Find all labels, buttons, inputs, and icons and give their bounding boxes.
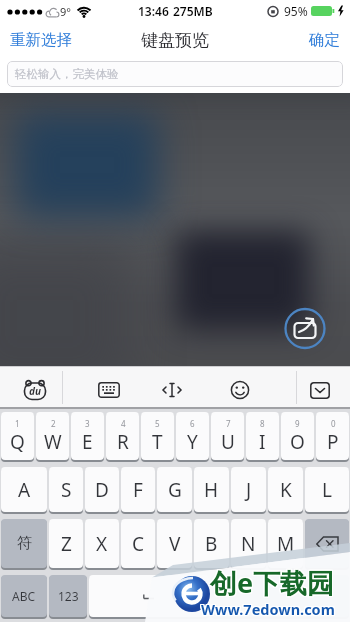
button[interactable]: du <box>18 375 52 405</box>
staticText: 创e下载园 <box>210 563 335 600</box>
staticText: Www.7edown.com <box>200 599 334 619</box>
staticText: 重新选择 <box>10 30 72 50</box>
button[interactable] <box>303 375 337 405</box>
button[interactable]: Z <box>49 519 83 568</box>
staticText: 创e下载园 <box>210 565 335 602</box>
button[interactable] <box>211 575 349 617</box>
staticText: 轻松输入，完美体验 <box>15 67 119 81</box>
button[interactable] <box>223 375 257 405</box>
staticText: 创e下载园 <box>209 565 334 602</box>
staticText: Www.7edown.com <box>201 600 335 620</box>
staticText: du <box>29 384 41 398</box>
staticText: Www.7edown.com <box>202 600 336 620</box>
staticText: 创e下载园 <box>211 564 336 601</box>
staticText: F <box>133 477 143 503</box>
staticText: 确定 <box>309 30 340 50</box>
button[interactable]: 4 <box>106 412 139 460</box>
button[interactable]: M <box>268 519 303 568</box>
staticText: 创e下载园 <box>210 564 335 601</box>
button[interactable]: J <box>231 467 266 512</box>
staticText: Www.7edown.com <box>202 598 336 618</box>
button[interactable] <box>92 375 126 405</box>
button[interactable]: N <box>231 519 266 568</box>
button[interactable]: F <box>121 467 155 512</box>
staticText: Www.7edown.com <box>202 599 336 619</box>
button[interactable]: D <box>85 467 119 512</box>
staticText: 4 <box>121 418 126 429</box>
staticText: L <box>322 477 332 503</box>
staticText: X <box>96 531 108 557</box>
staticText: 创e下载园 <box>211 563 336 600</box>
button[interactable]: G <box>157 467 192 512</box>
button[interactable]: ABC <box>1 575 47 617</box>
staticText: 123 <box>58 588 79 604</box>
staticText: 1 <box>15 418 20 429</box>
staticText: 95% <box>284 3 308 19</box>
staticText: C <box>132 531 145 557</box>
button[interactable] <box>155 375 189 405</box>
staticText: P <box>327 429 339 455</box>
button[interactable]: K <box>268 467 303 512</box>
staticText: G <box>168 477 182 503</box>
staticText: V <box>169 531 181 557</box>
staticText: J <box>246 477 252 503</box>
staticText: 符 <box>17 534 32 553</box>
staticText: 7 <box>226 418 231 429</box>
button[interactable]: 0 <box>316 412 349 460</box>
staticText: 键盘预览 <box>141 30 209 51</box>
button[interactable]: 6 <box>176 412 209 460</box>
staticText: T <box>152 429 163 455</box>
button[interactable]: 7 <box>211 412 244 460</box>
button[interactable]: 9 <box>281 412 314 460</box>
staticText: A <box>18 477 31 503</box>
staticText: Www.7edown.com <box>201 599 335 619</box>
staticText: Www.7edown.com <box>200 600 334 620</box>
staticText: D <box>95 477 109 503</box>
staticText: N <box>241 531 256 557</box>
button[interactable]: 8 <box>246 412 279 460</box>
button[interactable] <box>305 519 349 568</box>
button[interactable]: B <box>194 519 229 568</box>
button[interactable]: 确定 <box>301 24 350 56</box>
button[interactable]: 轻松输入，完美体验 <box>7 61 343 87</box>
button[interactable]: 5 <box>141 412 174 460</box>
button[interactable]: 3 <box>71 412 104 460</box>
staticText: 275MB <box>173 3 213 19</box>
staticText: ABC <box>12 588 36 604</box>
staticText: K <box>280 477 292 503</box>
staticText: R <box>117 429 129 455</box>
staticText: 创e下载园 <box>209 563 334 600</box>
staticText: M <box>277 531 295 557</box>
staticText: 6 <box>190 418 195 429</box>
button[interactable]: 123 <box>49 575 87 617</box>
staticText: B <box>205 531 218 557</box>
button[interactable]: 重新选择 <box>0 24 80 56</box>
staticText: 13:46 <box>138 3 169 19</box>
button[interactable]: H <box>194 467 229 512</box>
button[interactable]: 1 <box>1 412 34 460</box>
button[interactable]: X <box>85 519 119 568</box>
staticText: 5 <box>155 418 160 429</box>
staticText: I <box>259 429 266 455</box>
button[interactable]: S <box>49 467 83 512</box>
button[interactable]: L <box>305 467 349 512</box>
staticText: Z <box>61 531 72 557</box>
button[interactable]: 符 <box>1 519 47 568</box>
staticText: U <box>221 429 235 455</box>
button[interactable]: A <box>1 467 47 512</box>
staticText: Www.7edown.com <box>200 598 334 618</box>
button[interactable]: 2 <box>36 412 69 460</box>
staticText: E <box>82 429 93 455</box>
staticText: Y <box>187 429 198 455</box>
button[interactable]: C <box>121 519 155 568</box>
staticText: Q <box>10 429 25 455</box>
button[interactable]: V <box>157 519 192 568</box>
button[interactable] <box>285 308 326 349</box>
staticText: 0 <box>331 418 336 429</box>
staticText: O <box>290 429 305 455</box>
staticText: 3 <box>85 418 90 429</box>
staticText: 创e下载园 <box>209 564 334 601</box>
staticText: 9 <box>295 418 300 429</box>
staticText: Www.7edown.com <box>201 598 335 618</box>
button[interactable] <box>89 575 209 617</box>
